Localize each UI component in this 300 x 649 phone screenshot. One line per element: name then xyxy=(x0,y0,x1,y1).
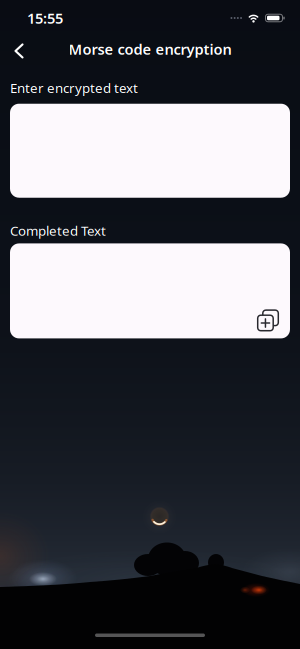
staticText: 15:55 xyxy=(27,8,63,28)
staticText: Enter encrypted text xyxy=(10,79,138,97)
button[interactable]: Copy xyxy=(257,309,279,331)
staticText: Morse code encryption xyxy=(68,39,231,59)
staticText: Completed Text xyxy=(10,222,106,239)
button[interactable]: Back xyxy=(0,32,24,66)
button[interactable]: Enter encrypted text xyxy=(10,104,290,198)
button[interactable]: Completed Text xyxy=(10,243,290,338)
